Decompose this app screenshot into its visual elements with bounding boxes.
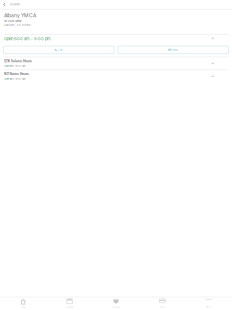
button[interactable]: Home	[0, 297, 46, 310]
staticText: ALBANY, CA 94706	[4, 24, 31, 27]
button[interactable]: Call	[4, 46, 114, 54]
button[interactable]: More	[186, 297, 232, 310]
staticText: Open	[4, 77, 9, 80]
button[interactable]: 1216 Solano Hours	[0, 57, 232, 69]
button[interactable]: Open 5:00 am - 9:00 pm	[0, 35, 232, 46]
staticText: until 9:00 pm	[10, 64, 26, 67]
button[interactable]: Email	[118, 46, 228, 54]
staticText: Open 5:00 am - 9:00 pm	[4, 36, 51, 41]
button[interactable]: 921 Kains Hours	[0, 70, 232, 82]
staticText: 921 Kains Avenue	[4, 20, 21, 22]
staticText: Schedule	[66, 306, 73, 308]
button[interactable]: Cards	[139, 297, 186, 310]
button[interactable]: Schedule	[46, 297, 93, 310]
staticText: Open	[4, 64, 9, 67]
staticText: 1216 Solano Hours	[4, 59, 32, 63]
staticText: Cards	[160, 306, 165, 308]
button[interactable]: All Locations	[0, 0, 23, 9]
staticText: until 9:00 pm	[10, 77, 26, 80]
staticText: All Locations	[10, 3, 20, 6]
staticText: More	[206, 306, 211, 308]
button[interactable]: Programs	[93, 297, 139, 310]
staticText: Email	[172, 48, 178, 51]
staticText: 921 Kains Hours	[4, 72, 29, 76]
staticText: Call	[58, 48, 63, 51]
staticText: Programs	[112, 306, 120, 308]
staticText: Albany YMCA	[4, 12, 36, 18]
staticText: Home	[21, 306, 25, 308]
